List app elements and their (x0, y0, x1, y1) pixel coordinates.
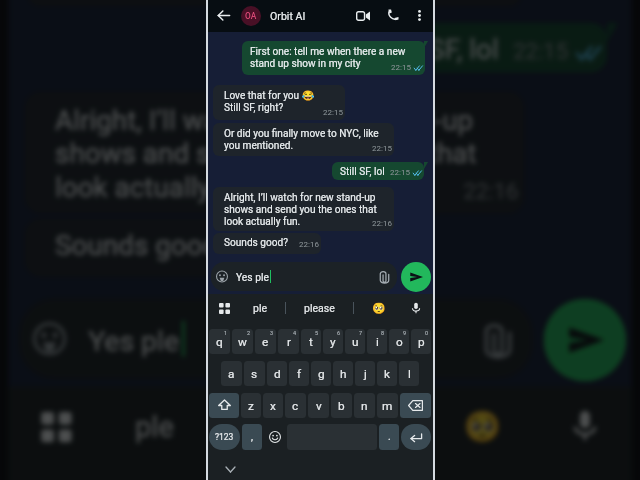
button[interactable]: Still SF, lol (353, 23, 607, 72)
button[interactable]: Toolbar (30, 401, 80, 450)
button[interactable]: g (311, 361, 331, 386)
staticText: Love that for you 😂 (224, 90, 315, 102)
button[interactable]: n (354, 393, 375, 418)
button[interactable]: Back (214, 6, 232, 24)
staticText: Yes ple (88, 324, 179, 357)
button[interactable]: f (289, 361, 309, 386)
button[interactable]: Video call (353, 6, 373, 26)
staticText: 8 (381, 330, 385, 336)
staticText: l (408, 367, 411, 381)
button[interactable]: Voice input (407, 299, 425, 317)
button[interactable]: z (241, 393, 261, 418)
button[interactable]: please (276, 409, 361, 442)
button[interactable]: Voice call (383, 5, 403, 25)
button[interactable]: Attach (477, 321, 516, 359)
button[interactable]: 🥺 (463, 409, 502, 445)
button[interactable]: y (323, 329, 343, 354)
staticText: 22:16 (299, 240, 319, 249)
staticText: ?123 (215, 432, 234, 442)
button[interactable]: q (209, 329, 230, 354)
button[interactable]: Attach (377, 270, 391, 284)
button[interactable]: Alright, I’ll watch for new stand-up (25, 92, 524, 213)
staticText: Sounds good? (55, 230, 232, 263)
button[interactable]: x (263, 393, 283, 418)
staticText: 22:15 (390, 168, 410, 177)
button[interactable]: ple (135, 409, 176, 442)
button[interactable]: l (399, 361, 419, 386)
button[interactable]: u (345, 329, 365, 354)
staticText: w (238, 335, 247, 349)
button[interactable]: i (367, 329, 387, 354)
staticText: 22:15 (513, 39, 568, 64)
button[interactable]: w (232, 329, 253, 354)
button[interactable]: r (278, 329, 299, 354)
staticText: o (396, 335, 403, 349)
button[interactable]: Yes ple (216, 262, 391, 291)
button[interactable]: c (285, 393, 306, 418)
button[interactable]: o (389, 329, 409, 354)
staticText: 🥺 (372, 302, 386, 315)
button[interactable]: OA (241, 6, 261, 26)
button[interactable]: Emoji (264, 424, 285, 450)
button[interactable]: b (331, 393, 352, 418)
button[interactable]: 🥺 (372, 302, 386, 315)
staticText: 22:15 (372, 144, 392, 153)
staticText: 2 (247, 330, 251, 336)
button[interactable]: Alright, I’ll watch for new stand-up (213, 187, 394, 231)
button[interactable]: , (242, 424, 262, 450)
button[interactable]: Sounds good? (25, 219, 323, 277)
staticText: , (251, 431, 253, 443)
staticText: ple (135, 409, 176, 442)
button[interactable]: t (301, 329, 321, 354)
button[interactable]: Yes ple (33, 299, 516, 379)
staticText: OA (245, 11, 257, 21)
button[interactable]: Toolbar (215, 299, 233, 317)
staticText: First one: tell me when there a new (250, 46, 406, 58)
staticText: 0 (425, 330, 429, 336)
button[interactable]: d (267, 361, 287, 386)
button[interactable]: Send (401, 262, 431, 292)
button[interactable]: ?123 (209, 424, 240, 450)
button[interactable]: Or did you finally move to NYC, like (25, 0, 524, 6)
button[interactable]: More options (410, 6, 428, 24)
button[interactable]: Sounds good? (213, 233, 321, 254)
button[interactable]: v (308, 393, 329, 418)
button[interactable]: Send (544, 299, 626, 381)
button[interactable]: please (304, 302, 335, 314)
staticText: please (304, 302, 335, 314)
button[interactable]: Enter (401, 424, 431, 450)
button[interactable]: Backspace (400, 393, 431, 418)
button[interactable]: ple (253, 302, 268, 314)
staticText: m (382, 399, 393, 413)
button[interactable]: h (333, 361, 353, 386)
button[interactable]: p (411, 329, 431, 354)
button[interactable]: Shift (209, 393, 239, 418)
button[interactable]: m (377, 393, 398, 418)
staticText: Alright, I’ll watch for new stand-up (55, 105, 474, 139)
button[interactable]: Voice input (560, 401, 610, 450)
button[interactable]: j (355, 361, 375, 386)
staticText: 22:16 (262, 238, 317, 263)
button[interactable]: Love that for you 😂 (213, 85, 345, 120)
button[interactable]: . (379, 424, 399, 450)
staticText: look actually fun. (55, 172, 267, 205)
button[interactable]: e (255, 329, 276, 354)
staticText: Still SF, lol (375, 34, 499, 67)
button[interactable]: Or did you finally move to NYC, like (213, 123, 394, 156)
staticText: 6 (337, 330, 341, 336)
staticText: 3 (270, 330, 274, 336)
staticText: e (262, 335, 269, 349)
button[interactable]: First one: tell me when there a new (242, 41, 425, 75)
button[interactable]: s (244, 361, 265, 386)
staticText: n (361, 399, 368, 413)
staticText: 22:16 (372, 219, 392, 228)
staticText: shows and send you the ones that (224, 204, 377, 216)
button[interactable]: k (377, 361, 397, 386)
button[interactable]: a (221, 361, 242, 386)
staticText: 22:15 (391, 63, 411, 72)
button[interactable]: Hide keyboard (223, 462, 237, 476)
staticText: k (384, 367, 390, 381)
button[interactable]: Still SF, lol (332, 162, 424, 180)
staticText: please (276, 409, 361, 442)
